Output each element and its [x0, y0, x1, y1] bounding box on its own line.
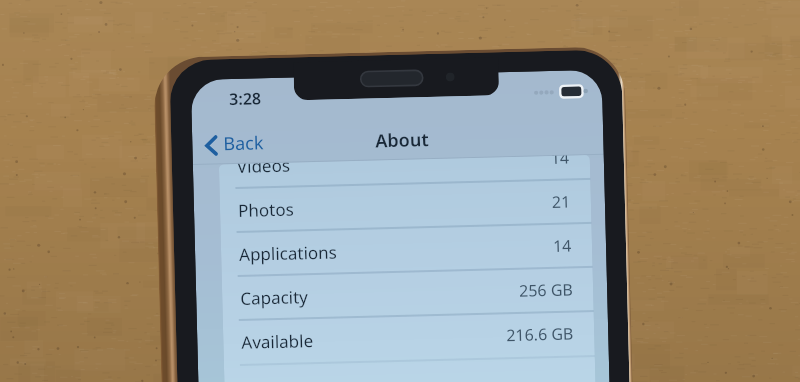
- staticText: Applications: [239, 240, 337, 266]
- staticText: Back: [223, 130, 265, 156]
- button[interactable]: Applications: [221, 225, 592, 276]
- staticText: 256 GB: [519, 278, 573, 302]
- staticText: Videos: [237, 163, 291, 178]
- button[interactable]: Videos: [219, 155, 590, 188]
- button[interactable]: Capacity: [222, 269, 594, 320]
- staticText: Available: [241, 329, 314, 354]
- staticText: Photos: [238, 197, 294, 222]
- staticText: 216.6 GB: [506, 322, 574, 346]
- staticText: 14: [551, 155, 570, 169]
- staticText: 3:28: [229, 87, 261, 110]
- staticText: About: [375, 127, 430, 153]
- button[interactable]: Back: [204, 131, 271, 158]
- button[interactable]: Photos: [219, 181, 591, 232]
- button[interactable]: Available: [223, 313, 595, 364]
- other: Battery: [559, 84, 587, 99]
- staticText: Capacity: [240, 285, 309, 310]
- staticText: 14: [553, 234, 572, 257]
- staticText: 21: [552, 190, 571, 213]
